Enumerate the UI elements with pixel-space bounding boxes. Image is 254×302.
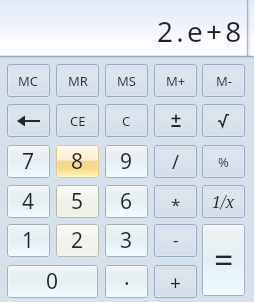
staticText: - (173, 228, 179, 251)
staticText: 5 (71, 187, 84, 216)
button[interactable]: 5 (56, 185, 99, 218)
button[interactable]: - (154, 224, 197, 257)
staticText: 4 (22, 187, 35, 216)
staticText: C (122, 112, 131, 130)
button[interactable]: 1/x (202, 185, 245, 218)
button[interactable]: 4 (7, 185, 50, 218)
staticText: MC (18, 72, 39, 90)
button[interactable]: MR (56, 64, 99, 97)
button[interactable]: C (105, 104, 148, 137)
button[interactable]: . (105, 265, 148, 298)
button[interactable]: MC (7, 64, 50, 97)
button[interactable]: Plus minus (154, 104, 197, 137)
button[interactable]: 1 (7, 224, 50, 257)
staticText: 2.e+8 (157, 12, 245, 50)
button[interactable]: M+ (154, 64, 197, 97)
staticText: 8 (71, 147, 84, 176)
staticText: 7 (22, 147, 35, 176)
staticText: . (124, 265, 130, 292)
button[interactable]: * (154, 185, 197, 218)
staticText: M+ (166, 72, 186, 90)
staticText: 6 (120, 187, 133, 216)
staticText: 1 (22, 226, 35, 255)
staticText: CE (70, 112, 86, 130)
button[interactable]: 9 (105, 145, 148, 178)
button[interactable]: Square root (202, 104, 245, 137)
staticText: 9 (120, 147, 133, 176)
staticText: % (218, 153, 229, 171)
button[interactable]: Backspace (7, 104, 50, 137)
button[interactable]: + (154, 265, 197, 298)
button[interactable]: 7 (7, 145, 50, 178)
button[interactable]: 0 (7, 265, 98, 298)
button[interactable]: CE (56, 104, 99, 137)
button[interactable]: 8 (56, 145, 99, 178)
button[interactable]: / (154, 145, 197, 178)
button[interactable]: 2 (56, 224, 99, 257)
staticText: MR (68, 72, 88, 90)
staticText: = (214, 237, 234, 283)
staticText: 2 (71, 226, 84, 255)
button[interactable]: % (202, 145, 245, 178)
staticText: 0 (46, 267, 59, 296)
button[interactable]: = (202, 224, 245, 296)
staticText: MS (117, 72, 136, 90)
staticText: + (170, 270, 181, 296)
staticText: 1/x (212, 191, 235, 213)
button[interactable]: M- (202, 64, 245, 97)
staticText: * (171, 193, 181, 216)
button[interactable]: 3 (105, 224, 148, 257)
button[interactable]: MS (105, 64, 148, 97)
staticText: / (172, 149, 180, 175)
staticText: 3 (120, 226, 133, 255)
button[interactable]: 6 (105, 185, 148, 218)
staticText: M- (216, 72, 232, 90)
